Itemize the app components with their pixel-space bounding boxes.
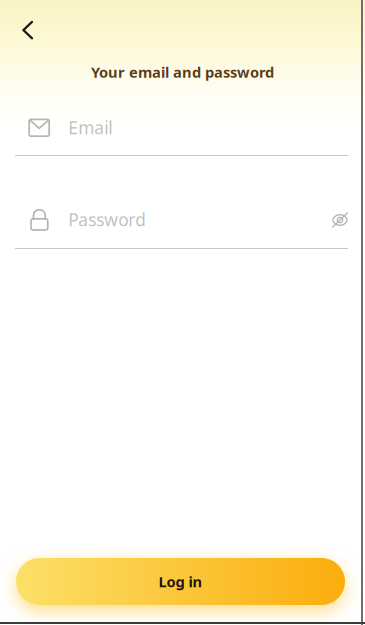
staticText: Password [68,208,146,231]
button[interactable]: Show password [325,205,355,235]
staticText: Email [68,116,112,139]
staticText: Log in [158,572,202,591]
staticText: Your email and password [91,62,274,82]
button[interactable]: Log in [16,558,345,605]
button[interactable]: Back [22,8,74,52]
